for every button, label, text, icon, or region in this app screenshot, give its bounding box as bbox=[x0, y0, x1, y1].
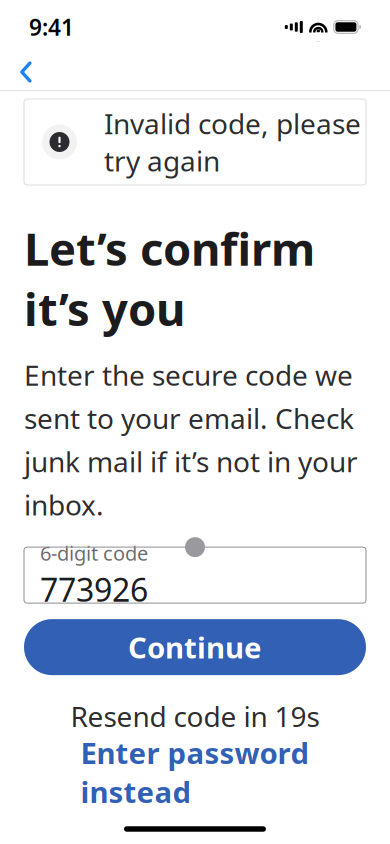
button[interactable]: 6-digit code bbox=[24, 547, 366, 603]
staticText: Invalid code, please try again bbox=[104, 105, 361, 179]
button[interactable]: Continue bbox=[24, 619, 366, 675]
staticText: Enter password instead bbox=[80, 733, 309, 811]
staticText: Let’s confirm it’s you bbox=[24, 218, 315, 338]
button[interactable]: Enter password instead bbox=[24, 750, 366, 794]
staticText: Enter the secure code we sent to your em… bbox=[24, 356, 358, 523]
staticText: Continue bbox=[128, 628, 262, 667]
button[interactable]: Resend code in 19s bbox=[24, 696, 366, 736]
button[interactable]: Back bbox=[4, 54, 48, 90]
staticText: 6-digit code bbox=[40, 540, 148, 566]
staticText: 773926 bbox=[40, 568, 148, 611]
staticText: 9:41 bbox=[29, 12, 74, 42]
staticText: Resend code in 19s bbox=[70, 697, 319, 735]
